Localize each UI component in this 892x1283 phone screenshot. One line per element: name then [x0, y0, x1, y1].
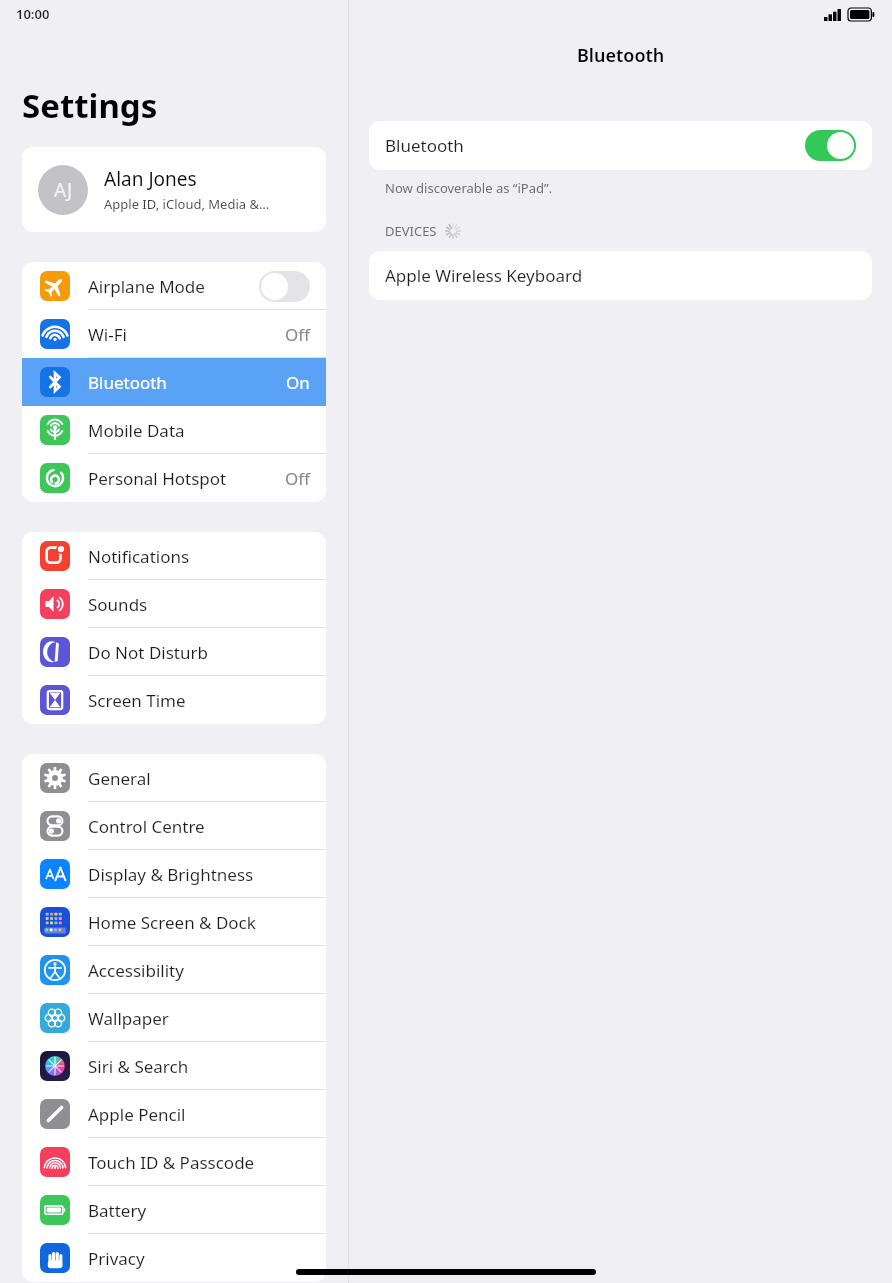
button[interactable]: Screen Time — [22, 676, 326, 724]
staticText: DEVICES — [385, 222, 437, 240]
staticText: Alan Jones — [104, 166, 197, 192]
button[interactable]: Apple Wireless Keyboard — [369, 251, 872, 300]
staticText: Control Centre — [88, 815, 310, 838]
staticText: Mobile Data — [88, 419, 310, 442]
button[interactable]: Privacy — [22, 1234, 326, 1282]
staticText: General — [88, 767, 310, 790]
staticText: Bluetooth — [88, 371, 286, 394]
staticText: Apple ID, iCloud, Media &… — [104, 195, 270, 213]
staticText: Now discoverable as “iPad”. — [385, 179, 553, 197]
button[interactable]: Bluetooth — [369, 121, 872, 170]
staticText: Wallpaper — [88, 1007, 310, 1030]
button[interactable]: Wallpaper — [22, 994, 326, 1042]
button[interactable]: Display & Brightness — [22, 850, 326, 898]
staticText: Touch ID & Passcode — [88, 1151, 310, 1174]
button[interactable]: Home Screen & Dock — [22, 898, 326, 946]
button[interactable]: Battery — [22, 1186, 326, 1234]
staticText: Airplane Mode — [88, 275, 259, 298]
button[interactable]: Accessibility — [22, 946, 326, 994]
staticText: On — [286, 371, 310, 394]
button[interactable]: Airplane Mode — [22, 262, 326, 310]
staticText: Off — [285, 323, 310, 346]
staticText: Personal Hotspot — [88, 467, 285, 490]
button[interactable]: Personal Hotspot — [22, 454, 326, 502]
staticText: Wi-Fi — [88, 323, 285, 346]
staticText: Display & Brightness — [88, 863, 310, 886]
staticText: Bluetooth — [385, 134, 805, 157]
button[interactable]: Touch ID & Passcode — [22, 1138, 326, 1186]
staticText: Off — [285, 467, 310, 490]
button[interactable]: Sounds — [22, 580, 326, 628]
staticText: Siri & Search — [88, 1055, 310, 1078]
button[interactable]: AJ — [22, 147, 326, 232]
button[interactable]: Wi-Fi — [22, 310, 326, 358]
staticText: Accessibility — [88, 959, 310, 982]
staticText: Battery — [88, 1199, 310, 1222]
staticText: Apple Pencil — [88, 1103, 310, 1126]
button[interactable]: Apple Pencil — [22, 1090, 326, 1138]
staticText: Sounds — [88, 593, 310, 616]
button[interactable]: Bluetooth — [22, 358, 326, 406]
staticText: Screen Time — [88, 689, 310, 712]
staticText: 10:00 — [16, 5, 50, 23]
staticText: AJ — [54, 177, 73, 203]
staticText: Settings — [22, 83, 158, 128]
button[interactable]: General — [22, 754, 326, 802]
staticText: Privacy — [88, 1247, 310, 1270]
staticText: Apple Wireless Keyboard — [385, 264, 583, 287]
button[interactable]: Control Centre — [22, 802, 326, 850]
staticText: Notifications — [88, 545, 310, 568]
button[interactable] — [259, 271, 310, 302]
button[interactable]: Mobile Data — [22, 406, 326, 454]
button[interactable]: Do Not Disturb — [22, 628, 326, 676]
button[interactable]: Siri & Search — [22, 1042, 326, 1090]
staticText: Bluetooth — [577, 43, 665, 68]
staticText: Do Not Disturb — [88, 641, 310, 664]
button[interactable]: Notifications — [22, 532, 326, 580]
button[interactable] — [805, 130, 856, 161]
staticText: Home Screen & Dock — [88, 911, 310, 934]
